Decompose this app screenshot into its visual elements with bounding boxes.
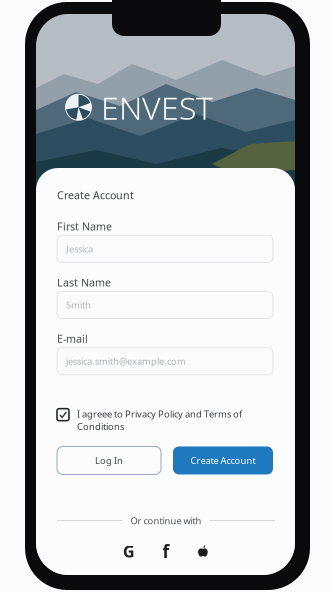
staticText: Create Account — [57, 188, 134, 202]
button[interactable]: Log In — [57, 446, 161, 474]
button[interactable]: Create Account — [173, 446, 273, 474]
button[interactable]: Continue with Apple — [196, 545, 209, 558]
staticText: Jessica — [66, 243, 93, 255]
staticText: Log In — [95, 454, 123, 467]
staticText: f — [162, 540, 169, 563]
staticText: ENVEST — [101, 86, 213, 128]
staticText: E-mail — [57, 331, 88, 346]
staticText: I agreee to Privacy Policy and Terms of … — [77, 408, 242, 432]
staticText: jessica.smith@example.com — [66, 355, 186, 367]
staticText: Smith — [66, 299, 91, 311]
button[interactable]: Continue with Facebook — [159, 545, 172, 558]
button[interactable]: Agree to terms — [57, 408, 69, 421]
staticText: First Name — [57, 219, 112, 233]
button[interactable]: Continue with Google — [122, 545, 135, 558]
staticText: G — [123, 541, 135, 562]
staticText: Last Name — [57, 275, 111, 289]
staticText: Or continue with — [130, 514, 201, 527]
staticText: Create Account — [190, 454, 255, 467]
